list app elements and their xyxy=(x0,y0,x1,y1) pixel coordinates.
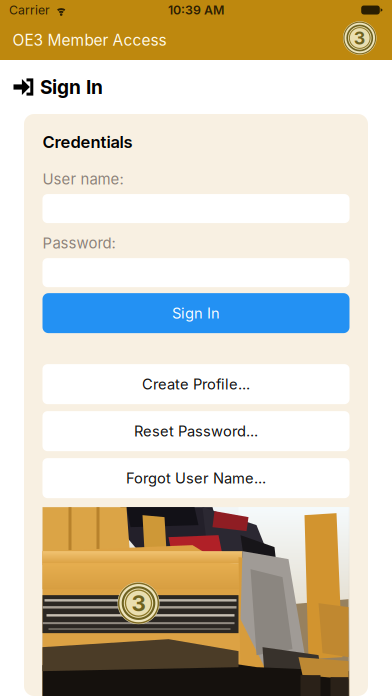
button[interactable]: Forgot User Name... xyxy=(42,458,349,498)
staticText: OE3 Member Access xyxy=(12,31,166,49)
staticText: 10:39 AM xyxy=(168,2,224,17)
staticText: 3 xyxy=(354,27,366,49)
button[interactable]: Sign In xyxy=(42,293,349,333)
staticText: Sign In xyxy=(172,304,220,322)
button[interactable]: OE3 emblem xyxy=(343,23,376,57)
staticText: 3 xyxy=(131,590,145,617)
staticText: Reset Password... xyxy=(134,422,258,440)
staticText: Password: xyxy=(42,234,115,252)
button[interactable]: Create Profile... xyxy=(42,364,349,404)
staticText: Sign In xyxy=(40,75,103,99)
button[interactable]: Reset Password... xyxy=(42,411,349,451)
staticText: Credentials xyxy=(42,132,132,152)
staticText: Forgot User Name... xyxy=(126,469,266,487)
staticText: Create Profile... xyxy=(142,375,250,393)
staticText: User name: xyxy=(42,170,123,188)
staticText: Carrier xyxy=(9,3,50,17)
